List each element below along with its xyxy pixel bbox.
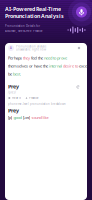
staticText: best. <box>13 71 21 77</box>
staticText: Pronunciation Analysis <box>5 12 64 20</box>
staticText: /preɪ/ <box>8 91 16 94</box>
staticText: desire to <box>63 63 79 69</box>
staticText: unavailable right now <box>16 48 46 51</box>
staticText: excel <box>79 63 88 69</box>
staticText: feel the <box>31 55 44 61</box>
staticText: Perhaps <box>8 55 23 61</box>
staticText: AI-Powered Real-Time <box>5 5 61 13</box>
staticText: they <box>23 55 31 61</box>
staticText: be <box>8 71 13 77</box>
staticText: themselves or have the <box>8 63 49 69</box>
staticText: [p] <box>8 115 12 120</box>
staticText: phoneme-level pronunciation breakdown <box>8 102 66 106</box>
staticText: need to prove <box>44 55 67 61</box>
staticText: Prey <box>8 107 19 114</box>
staticText: Pronunciation Details for <box>5 24 40 28</box>
button[interactable]: Retry analysis <box>76 85 80 89</box>
staticText: Accurate, Stress-Free Practice <box>5 29 43 33</box>
staticText: sound like <box>31 115 48 120</box>
staticText: good <box>13 115 21 120</box>
button[interactable]: Record pronunciation <box>76 6 87 17</box>
button[interactable]: Hear it <box>8 96 21 100</box>
staticText: internal <box>49 63 63 69</box>
staticText: Hear it <box>12 96 21 100</box>
staticText: Prey <box>8 83 19 90</box>
staticText: Practice <box>29 96 39 100</box>
staticText: A <box>10 46 12 50</box>
button[interactable]: Dismiss notice <box>77 46 81 50</box>
staticText: [ɹeɪ] <box>23 115 30 120</box>
button[interactable]: Practice <box>25 96 39 100</box>
staticText: Pronunciation analysis <box>16 45 46 48</box>
